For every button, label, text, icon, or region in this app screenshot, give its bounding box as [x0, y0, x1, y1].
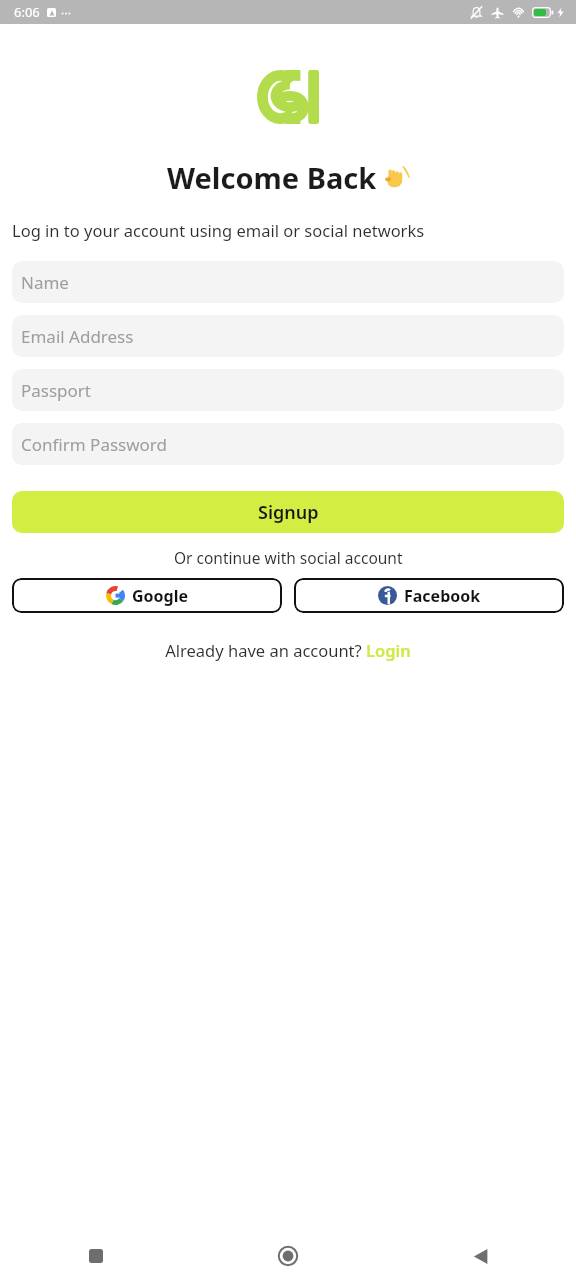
button[interactable]: Home — [192, 1232, 384, 1280]
button[interactable]: Signup — [12, 491, 564, 533]
staticText: Google — [132, 585, 189, 607]
button[interactable]: Passport — [12, 369, 564, 411]
staticText: Log in to your account using email or so… — [12, 219, 536, 241]
staticText: Or continue with social account — [174, 547, 403, 568]
button[interactable]: Facebook — [294, 578, 564, 613]
staticText: Name — [21, 271, 69, 294]
staticText: Facebook — [404, 585, 481, 607]
button[interactable]: Email Address — [12, 315, 564, 357]
button[interactable]: Confirm Password — [12, 423, 564, 465]
button[interactable]: Already have an account? Login — [165, 639, 411, 661]
button[interactable]: Name — [12, 261, 564, 303]
button[interactable]: Back — [384, 1232, 576, 1280]
button[interactable]: Recent apps — [0, 1232, 192, 1280]
staticText: Passport — [21, 379, 92, 402]
staticText: Email Address — [21, 325, 134, 348]
staticText: Confirm Password — [21, 433, 167, 456]
staticText: 6:06 — [14, 3, 40, 21]
staticText: Already have an account? Login — [165, 639, 411, 661]
staticText: Signup — [258, 500, 319, 525]
button[interactable]: Google — [12, 578, 282, 613]
staticText: Welcome Back — [167, 158, 377, 197]
